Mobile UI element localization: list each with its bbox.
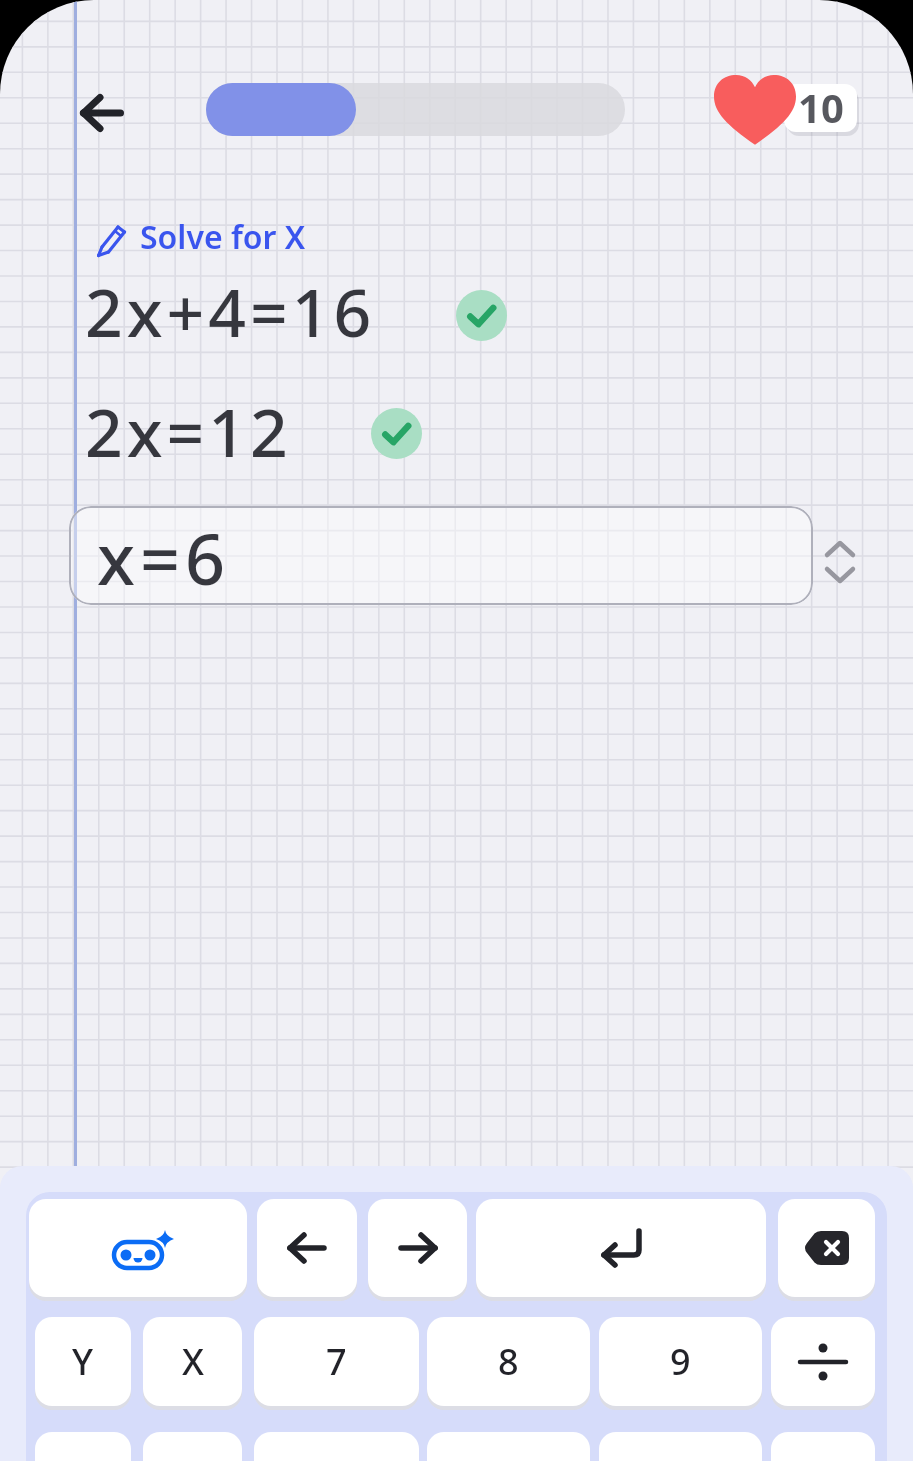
staticText: X (182, 1337, 204, 1386)
button[interactable]: 7 (254, 1317, 419, 1406)
staticText: 2x+4=16 (85, 266, 376, 346)
button[interactable]: x=6 (69, 506, 813, 605)
button[interactable] (143, 1432, 242, 1461)
button[interactable] (771, 1432, 875, 1461)
button[interactable]: Solve for X (140, 215, 340, 259)
button[interactable] (427, 1432, 590, 1461)
staticText: 10 (798, 84, 844, 128)
button[interactable] (254, 1432, 419, 1461)
staticText: 7 (326, 1337, 347, 1386)
button[interactable]: X (143, 1317, 242, 1406)
staticText: Y (72, 1337, 94, 1386)
staticText: 9 (670, 1337, 691, 1386)
button[interactable]: 8 (427, 1317, 590, 1406)
button[interactable] (778, 1199, 875, 1297)
button[interactable]: 9 (599, 1317, 762, 1406)
button[interactable] (599, 1432, 762, 1461)
staticText: 2x=12 (85, 386, 292, 466)
button[interactable]: Y (35, 1317, 131, 1406)
button[interactable] (368, 1199, 467, 1297)
button[interactable] (816, 534, 864, 590)
button[interactable] (29, 1199, 247, 1297)
button[interactable]: 10 (784, 84, 857, 132)
button[interactable] (476, 1199, 766, 1297)
staticText: 8 (498, 1337, 519, 1386)
button[interactable] (257, 1199, 357, 1297)
staticText: x=6 (97, 510, 231, 605)
button[interactable] (35, 1432, 131, 1461)
button[interactable] (70, 86, 132, 140)
staticText: Solve for X (140, 215, 306, 259)
button[interactable] (771, 1317, 875, 1406)
